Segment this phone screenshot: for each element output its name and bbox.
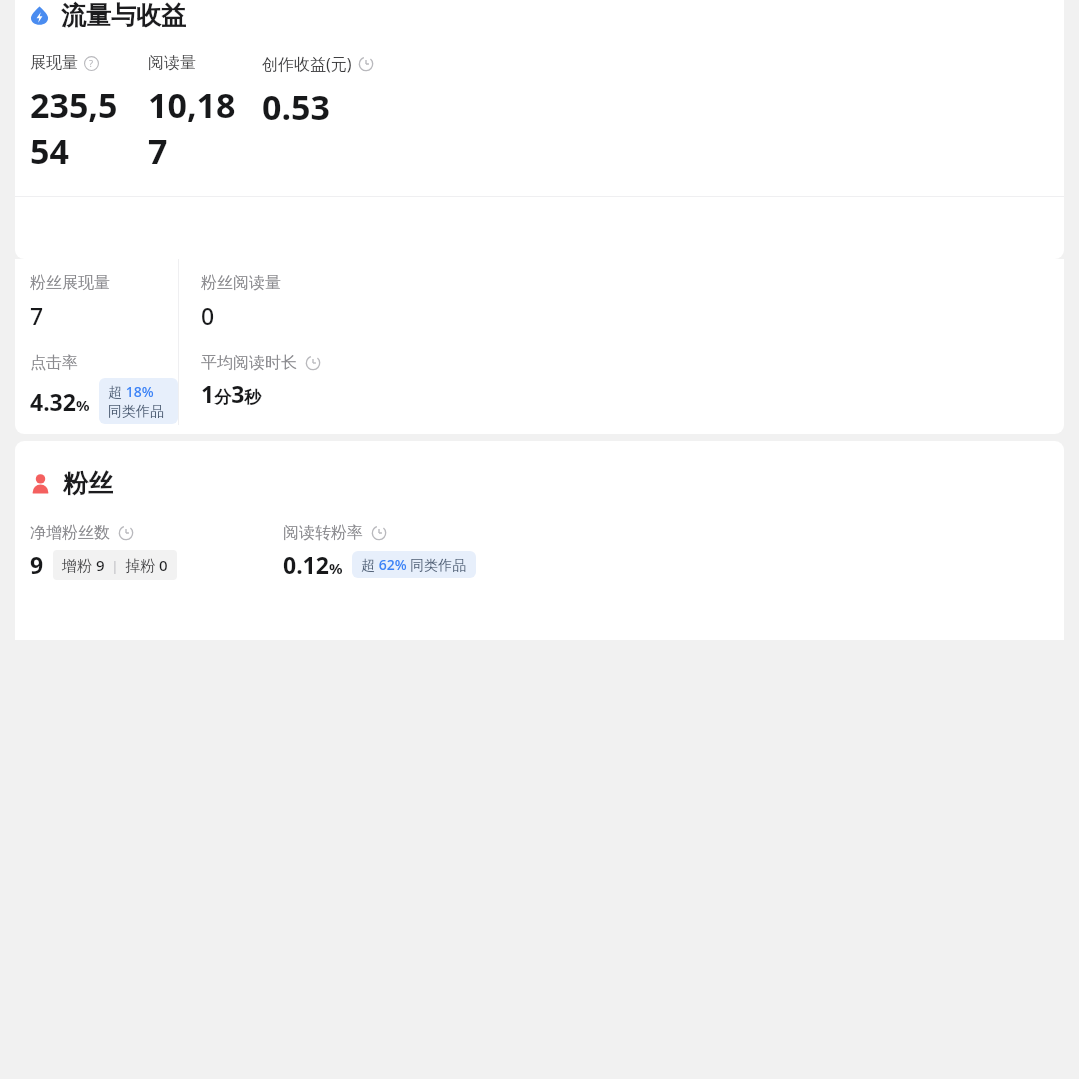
staticText: 创作收益(元) bbox=[262, 53, 352, 75]
button[interactable]: 展现量 bbox=[30, 53, 128, 174]
button[interactable]: 阅读转粉率 bbox=[283, 523, 1064, 580]
button[interactable]: 阅读量 bbox=[148, 53, 248, 174]
button[interactable]: 超 62% 同类作品 bbox=[352, 551, 476, 578]
button[interactable]: 净增粉丝数 bbox=[15, 523, 283, 580]
staticText: 超 62% 同类作品 bbox=[361, 555, 467, 574]
staticText: 粉丝阅读量 bbox=[201, 273, 281, 293]
staticText: 平均阅读时长 bbox=[201, 353, 297, 373]
button[interactable]: 流量与收益 bbox=[15, 0, 1064, 31]
staticText: 展现量 bbox=[30, 53, 78, 73]
button[interactable]: 粉丝展现量 bbox=[15, 259, 178, 425]
staticText: 0.53 bbox=[262, 84, 330, 130]
staticText: 点击率 bbox=[30, 353, 78, 373]
staticText: 粉丝 bbox=[63, 468, 113, 499]
staticText: 10,187 bbox=[148, 82, 248, 174]
staticText: 4.32% bbox=[30, 386, 90, 417]
staticText: 粉丝展现量 bbox=[30, 273, 110, 293]
staticText: 1分3秒 bbox=[201, 378, 262, 409]
staticText: 0 bbox=[201, 300, 215, 331]
button[interactable]: 创作收益(元) bbox=[262, 53, 374, 130]
staticText: 超 18% 同类作品 bbox=[108, 382, 169, 420]
staticText: 增粉 9 | 掉粉 0 bbox=[62, 555, 168, 575]
button[interactable]: 粉丝阅读量 bbox=[179, 259, 1064, 425]
staticText: 阅读转粉率 bbox=[283, 523, 363, 543]
button[interactable]: 超 18% 同类作品 bbox=[99, 378, 178, 424]
staticText: ? bbox=[89, 57, 94, 70]
button[interactable]: 增粉 9 | 掉粉 0 bbox=[53, 550, 177, 580]
staticText: 净增粉丝数 bbox=[30, 523, 110, 543]
staticText: 阅读量 bbox=[148, 53, 196, 73]
staticText: 0.12% bbox=[283, 549, 343, 580]
staticText: 9 bbox=[30, 549, 44, 580]
staticText: 7 bbox=[30, 300, 44, 331]
staticText: 流量与收益 bbox=[61, 0, 186, 31]
button[interactable]: 说明 bbox=[84, 56, 99, 71]
button[interactable]: 粉丝 bbox=[15, 468, 1064, 499]
staticText: 235,554 bbox=[30, 82, 128, 174]
